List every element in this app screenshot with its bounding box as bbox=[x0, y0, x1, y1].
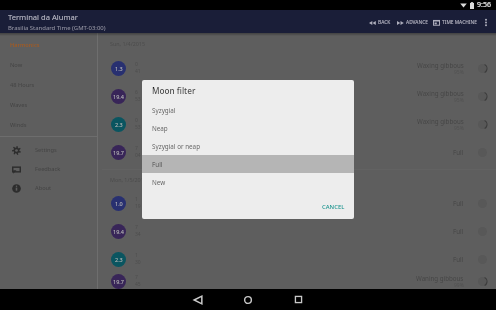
staticText: 30 bbox=[135, 259, 141, 266]
staticText: 53 bbox=[135, 96, 141, 103]
button[interactable]: 19.4 bbox=[98, 217, 496, 245]
staticText: Now bbox=[10, 61, 23, 69]
staticText: Full bbox=[152, 160, 163, 169]
staticText: Waves bbox=[10, 101, 28, 109]
button[interactable]: 19.7 bbox=[98, 138, 496, 166]
button[interactable]: About bbox=[0, 178, 98, 197]
staticText: 2.3 bbox=[115, 121, 123, 128]
staticText: 1 bbox=[135, 196, 138, 203]
staticText: Settings bbox=[35, 146, 57, 154]
staticText: 45 bbox=[135, 281, 141, 288]
staticText: Harmonics bbox=[10, 41, 40, 49]
staticText: Waxing gibbous bbox=[417, 89, 464, 97]
staticText: 7 bbox=[135, 145, 138, 152]
button[interactable]: CANCEL bbox=[313, 199, 354, 215]
staticText: Winds bbox=[10, 121, 27, 129]
staticText: 53 bbox=[135, 124, 141, 131]
staticText: Waning gibbous bbox=[416, 274, 464, 282]
button[interactable]: Neap bbox=[142, 119, 354, 137]
button[interactable]: Syzygial bbox=[142, 101, 354, 119]
button[interactable]: Feedback bbox=[0, 159, 98, 178]
button[interactable]: 2.3 bbox=[98, 110, 496, 138]
staticText: Full bbox=[453, 255, 464, 263]
staticText: 2.3 bbox=[115, 256, 123, 263]
staticText: 6 bbox=[135, 89, 138, 96]
staticText: ADVANCE bbox=[406, 19, 428, 26]
staticText: 48 Hours bbox=[10, 81, 35, 89]
button[interactable]: Home bbox=[227, 289, 269, 310]
staticText: 34 bbox=[135, 231, 141, 238]
button[interactable]: Settings bbox=[0, 140, 98, 159]
button[interactable]: 19.7 bbox=[98, 273, 496, 289]
staticText: 19.4 bbox=[113, 93, 124, 100]
button[interactable]: BACK bbox=[369, 17, 391, 28]
staticText: 19.7 bbox=[113, 149, 124, 156]
staticText: CANCEL bbox=[322, 203, 345, 211]
staticText: Syzygial or neap bbox=[152, 142, 201, 151]
staticText: 1 bbox=[135, 252, 138, 259]
button[interactable]: 1.0 bbox=[98, 189, 496, 217]
button[interactable]: 2.3 bbox=[98, 245, 496, 273]
staticText: Neap bbox=[152, 124, 168, 133]
button[interactable]: Harmonics bbox=[0, 35, 98, 55]
staticText: 19.4 bbox=[113, 228, 124, 235]
staticText: Syzygial bbox=[152, 106, 176, 115]
staticText: About bbox=[35, 184, 52, 192]
staticText: Waxing gibbous bbox=[417, 117, 464, 125]
staticText: Full bbox=[453, 199, 464, 207]
staticText: 19 bbox=[135, 203, 141, 210]
staticText: 0 bbox=[135, 61, 138, 68]
button[interactable]: More options bbox=[480, 16, 492, 28]
staticText: Full bbox=[453, 148, 464, 156]
staticText: Brasilia Standard Time (GMT-03:00) bbox=[8, 24, 106, 32]
staticText: 7 bbox=[135, 274, 138, 281]
button[interactable]: Recents bbox=[277, 289, 319, 310]
staticText: Moon filter bbox=[152, 85, 196, 96]
staticText: TIME MACHINE bbox=[442, 19, 477, 26]
button[interactable]: Syzygial or neap bbox=[142, 137, 354, 155]
staticText: Sun, 1/4/2015 bbox=[110, 40, 145, 47]
staticText: 9:56 bbox=[477, 0, 491, 10]
staticText: Full bbox=[453, 227, 464, 235]
staticText: 04 bbox=[135, 152, 141, 159]
staticText: 7 bbox=[135, 224, 138, 231]
staticText: New bbox=[152, 178, 166, 187]
staticText: 1.0 bbox=[115, 200, 123, 207]
staticText: 19.7 bbox=[113, 278, 124, 285]
staticText: 1.3 bbox=[115, 65, 123, 72]
button[interactable]: 19.4 bbox=[98, 82, 496, 110]
staticText: Mon, 1/5/2015 bbox=[110, 176, 147, 183]
staticText: 41 bbox=[135, 68, 141, 75]
button[interactable]: New bbox=[142, 173, 354, 191]
button[interactable]: Back bbox=[177, 289, 219, 310]
button[interactable]: Full bbox=[142, 155, 354, 173]
staticText: Waxing gibbous bbox=[417, 61, 464, 69]
button[interactable]: TIME MACHINE bbox=[433, 17, 477, 28]
staticText: 0 bbox=[135, 117, 138, 124]
staticText: Feedback bbox=[35, 165, 61, 173]
button[interactable]: ADVANCE bbox=[397, 17, 428, 28]
staticText: BACK bbox=[378, 19, 391, 26]
staticText: Terminal da Alumar bbox=[8, 12, 78, 22]
button[interactable]: 1.3 bbox=[98, 54, 496, 82]
